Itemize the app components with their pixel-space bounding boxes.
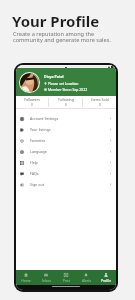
button[interactable]: Followers xyxy=(16,97,48,107)
staticText: Help xyxy=(30,160,38,165)
staticText: Your Profile xyxy=(12,11,100,31)
button[interactable]: Your listings xyxy=(16,124,116,135)
button[interactable]: Help xyxy=(16,157,116,168)
button[interactable]: Alerts xyxy=(76,273,96,282)
staticText: Following xyxy=(58,97,74,102)
button[interactable]: Language xyxy=(16,146,116,157)
button[interactable]: Account Settings xyxy=(16,113,116,124)
staticText: Inbox xyxy=(42,278,51,282)
staticText: Post xyxy=(63,278,70,282)
staticText: Divya Patel xyxy=(44,74,64,79)
button[interactable]: Inbox xyxy=(36,273,56,282)
button[interactable]: Profile xyxy=(96,273,116,282)
staticText: Your listings xyxy=(30,127,51,132)
staticText: Sign out xyxy=(30,182,44,187)
staticText: Profile xyxy=(101,278,111,282)
button[interactable]: Items Sold xyxy=(83,97,116,107)
staticText: Please set Location xyxy=(48,81,79,86)
staticText: FAQs xyxy=(30,171,39,176)
staticText: Items Sold xyxy=(91,97,109,102)
staticText: Home xyxy=(21,278,31,282)
staticText: Member Since: Sep 2022 xyxy=(48,87,88,92)
button[interactable]: Home xyxy=(16,273,36,282)
staticText: 0 xyxy=(99,103,101,107)
staticText: Alerts xyxy=(82,278,91,282)
button[interactable]: Sign out xyxy=(16,179,116,190)
staticText: Create a reputation among the community … xyxy=(13,30,111,44)
button[interactable]: Favorites xyxy=(16,135,116,146)
staticText: 0 xyxy=(31,103,33,107)
button[interactable]: Following xyxy=(49,97,82,107)
staticText: Followers xyxy=(24,97,40,102)
staticText: Favorites xyxy=(30,138,46,143)
button[interactable]: Post xyxy=(56,273,76,282)
button[interactable]: FAQs xyxy=(16,168,116,179)
staticText: Account Settings xyxy=(30,116,59,121)
staticText: Language xyxy=(30,149,47,154)
staticText: 0 xyxy=(65,103,67,107)
